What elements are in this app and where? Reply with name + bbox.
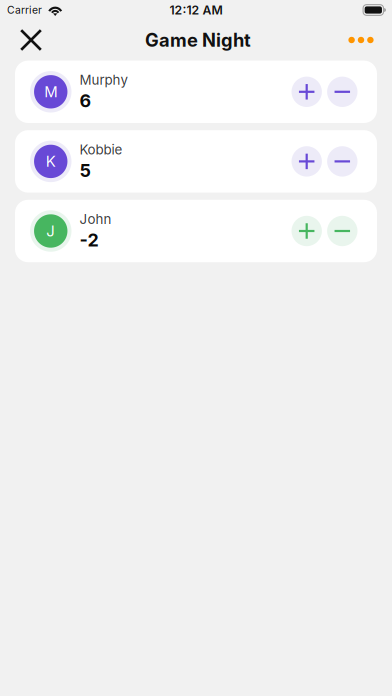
- staticText: 6: [79, 90, 91, 112]
- button[interactable]: M: [15, 61, 377, 123]
- button[interactable]: K: [15, 130, 377, 193]
- staticText: Kobbie: [79, 141, 122, 158]
- button[interactable]: Increase John's score: [291, 216, 322, 246]
- staticText: 5: [79, 160, 90, 181]
- staticText: -2: [79, 229, 98, 251]
- button[interactable]: More options: [341, 20, 381, 60]
- button[interactable]: Decrease John's score: [327, 216, 357, 246]
- button[interactable]: J: [15, 200, 377, 262]
- staticText: Murphy: [79, 72, 127, 88]
- staticText: John: [79, 211, 111, 227]
- staticText: K: [46, 152, 56, 170]
- staticText: 12:12 AM: [169, 3, 222, 17]
- button[interactable]: Decrease Murphy's score: [327, 77, 357, 107]
- button[interactable]: Increase Murphy's score: [291, 77, 322, 107]
- button[interactable]: Decrease Kobbie's score: [327, 146, 357, 177]
- staticText: J: [46, 222, 55, 240]
- staticText: Carrier: [7, 4, 42, 16]
- staticText: Game Night: [145, 29, 251, 51]
- button[interactable]: Increase Kobbie's score: [291, 146, 322, 177]
- staticText: M: [44, 83, 57, 101]
- button[interactable]: Close: [11, 20, 51, 60]
